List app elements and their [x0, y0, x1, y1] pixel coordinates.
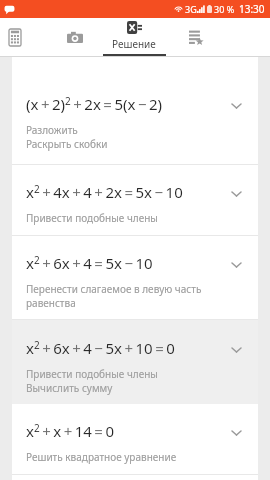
staticText: x2 + 6x + 4 − 5x + 10 = 0: [26, 338, 175, 359]
staticText: Решение: [112, 37, 156, 51]
button[interactable]: Camera: [47, 18, 103, 57]
staticText: 30 %: [214, 3, 235, 15]
button[interactable]: (x + 2)2 + 2x = 5(x − 2): [12, 57, 258, 164]
staticText: равенства: [26, 296, 76, 310]
button[interactable]: Решение: [102, 18, 166, 57]
button[interactable]: Calculator: [0, 18, 41, 57]
staticText: 13:30: [239, 2, 265, 16]
staticText: x2 + 6x + 4 = 5x − 10: [26, 253, 153, 274]
staticText: Привести подобные члены: [26, 211, 158, 225]
staticText: 3G: [185, 3, 197, 15]
button[interactable]: x2 + 6x + 4 = 5x − 10: [12, 236, 258, 319]
button[interactable]: x2 + 6x + 4 − 5x + 10 = 0: [12, 320, 258, 404]
staticText: x2 + 4x + 4 + 2x = 5x − 10: [26, 182, 183, 203]
staticText: Раскрыть скобки: [26, 137, 108, 151]
staticText: Разложить: [26, 123, 78, 137]
button[interactable]: x2 + x + 14 = 0: [12, 404, 258, 474]
staticText: Привести подобные члены: [26, 367, 158, 381]
staticText: (x + 2)2 + 2x = 5(x − 2): [26, 94, 163, 115]
button[interactable]: Saved: [168, 18, 224, 57]
staticText: x2 + x + 14 = 0: [26, 421, 115, 442]
button[interactable]: x2 + 4x + 4 + 2x = 5x − 10: [12, 165, 258, 235]
staticText: Решить квадратное уравнение: [26, 450, 177, 464]
staticText: Вычислить сумму: [26, 381, 113, 395]
staticText: Перенести слагаемое в левую часть: [26, 282, 202, 296]
